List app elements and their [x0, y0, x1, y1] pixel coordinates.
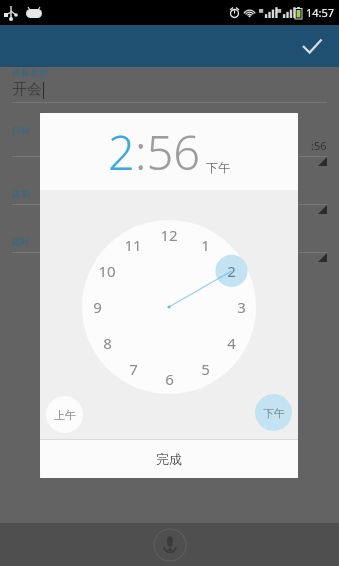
staticText: 8 — [103, 333, 112, 353]
button[interactable]: 6 — [157, 368, 181, 390]
staticText: 2 — [227, 261, 236, 281]
staticText: 完成 — [156, 451, 182, 467]
staticText: 上午 — [54, 408, 76, 422]
staticText: :56 — [311, 138, 327, 153]
staticText: 12 — [160, 225, 178, 245]
staticText: 14:57 — [306, 5, 335, 20]
button[interactable]: 4 — [219, 332, 243, 354]
staticText: 11 — [124, 235, 142, 255]
staticText: 开会 — [12, 80, 42, 99]
staticText: 下午 — [206, 160, 230, 175]
staticText: 3 — [237, 297, 246, 317]
button[interactable]: 3 — [229, 296, 253, 318]
button[interactable]: 1 — [193, 234, 217, 256]
button[interactable]: Voice input — [153, 528, 187, 562]
button[interactable]: Confirm — [297, 31, 327, 61]
staticText: 9 — [93, 297, 102, 317]
button[interactable]: 10 — [95, 260, 119, 282]
button[interactable]: 12 — [157, 224, 181, 246]
staticText: 目标名称 — [12, 67, 48, 78]
staticText: 2 — [108, 120, 135, 184]
staticText: 超时 — [12, 236, 30, 247]
staticText: 5 — [201, 359, 210, 379]
staticText: 提前 — [12, 188, 30, 199]
button[interactable]: 9 — [85, 296, 109, 318]
staticText: 7 — [129, 359, 138, 379]
button[interactable]: 完成 — [40, 440, 298, 478]
button[interactable]: 2 — [108, 120, 135, 184]
button[interactable]: :56 — [135, 120, 201, 184]
staticText: 1 — [201, 235, 210, 255]
button[interactable]: 2 — [219, 260, 243, 282]
staticText: 下午 — [263, 406, 285, 420]
staticText: 6 — [165, 369, 174, 389]
button[interactable]: 7 — [121, 358, 145, 380]
staticText: 10 — [98, 261, 116, 281]
button[interactable]: 11 — [121, 234, 145, 256]
button[interactable]: 下午 — [255, 394, 292, 431]
staticText: 目标 — [12, 125, 30, 136]
staticText: 4 — [227, 333, 236, 353]
button[interactable]: 8 — [95, 332, 119, 354]
button[interactable]: 5 — [193, 358, 217, 380]
button[interactable]: 上午 — [46, 396, 83, 433]
